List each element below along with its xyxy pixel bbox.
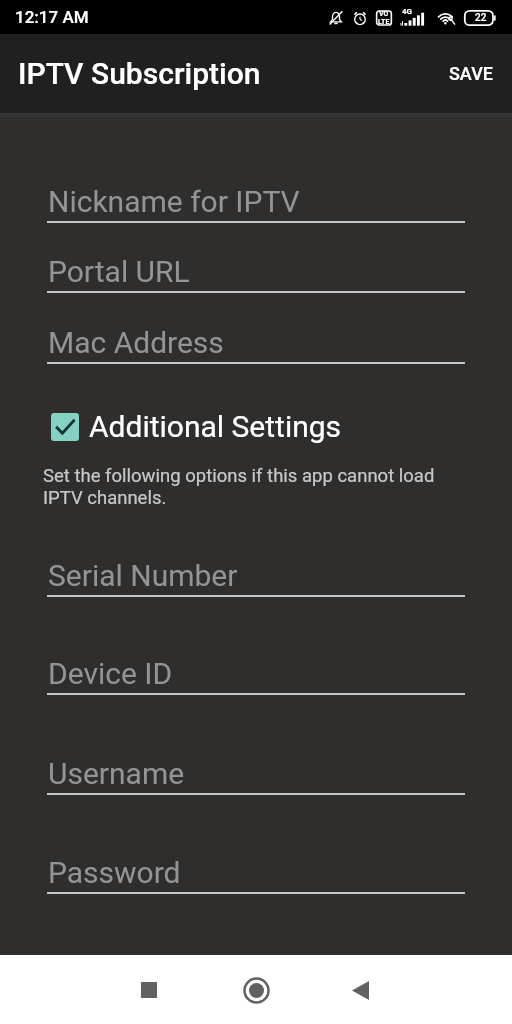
button[interactable]: Mac Address	[47, 325, 465, 364]
staticText: Nickname for IPTV	[48, 184, 300, 219]
staticText: Portal URL	[48, 254, 190, 289]
staticText: SAVE	[449, 63, 494, 84]
button[interactable]: Additional Settings	[51, 409, 512, 444]
button[interactable]: Username	[47, 756, 465, 795]
staticText: Device ID	[48, 656, 173, 691]
staticText: Set the following options if this app ca…	[43, 465, 435, 508]
staticText: Password	[48, 855, 181, 890]
staticText: Username	[48, 756, 185, 791]
button[interactable]: Serial Number	[47, 558, 465, 597]
button[interactable]: Portal URL	[47, 254, 465, 293]
button[interactable]: Nickname for IPTV	[47, 184, 465, 223]
staticText: 12:17 AM	[15, 7, 89, 27]
button[interactable]: Home	[228, 962, 284, 1018]
button[interactable]: Device ID	[47, 656, 465, 695]
button[interactable]: Recent apps	[121, 962, 177, 1018]
button[interactable]: SAVE	[431, 45, 512, 102]
staticText: Serial Number	[48, 558, 238, 593]
staticText: VO	[379, 10, 389, 18]
button[interactable]: Back	[332, 962, 388, 1018]
staticText: IPTV Subscription	[18, 56, 261, 91]
staticText: Mac Address	[48, 325, 224, 360]
staticText: LTE	[378, 18, 390, 26]
staticText: Additional Settings	[89, 409, 342, 444]
staticText: 4G	[402, 7, 413, 16]
button[interactable]: Password	[47, 855, 465, 894]
staticText: 22	[475, 12, 487, 24]
